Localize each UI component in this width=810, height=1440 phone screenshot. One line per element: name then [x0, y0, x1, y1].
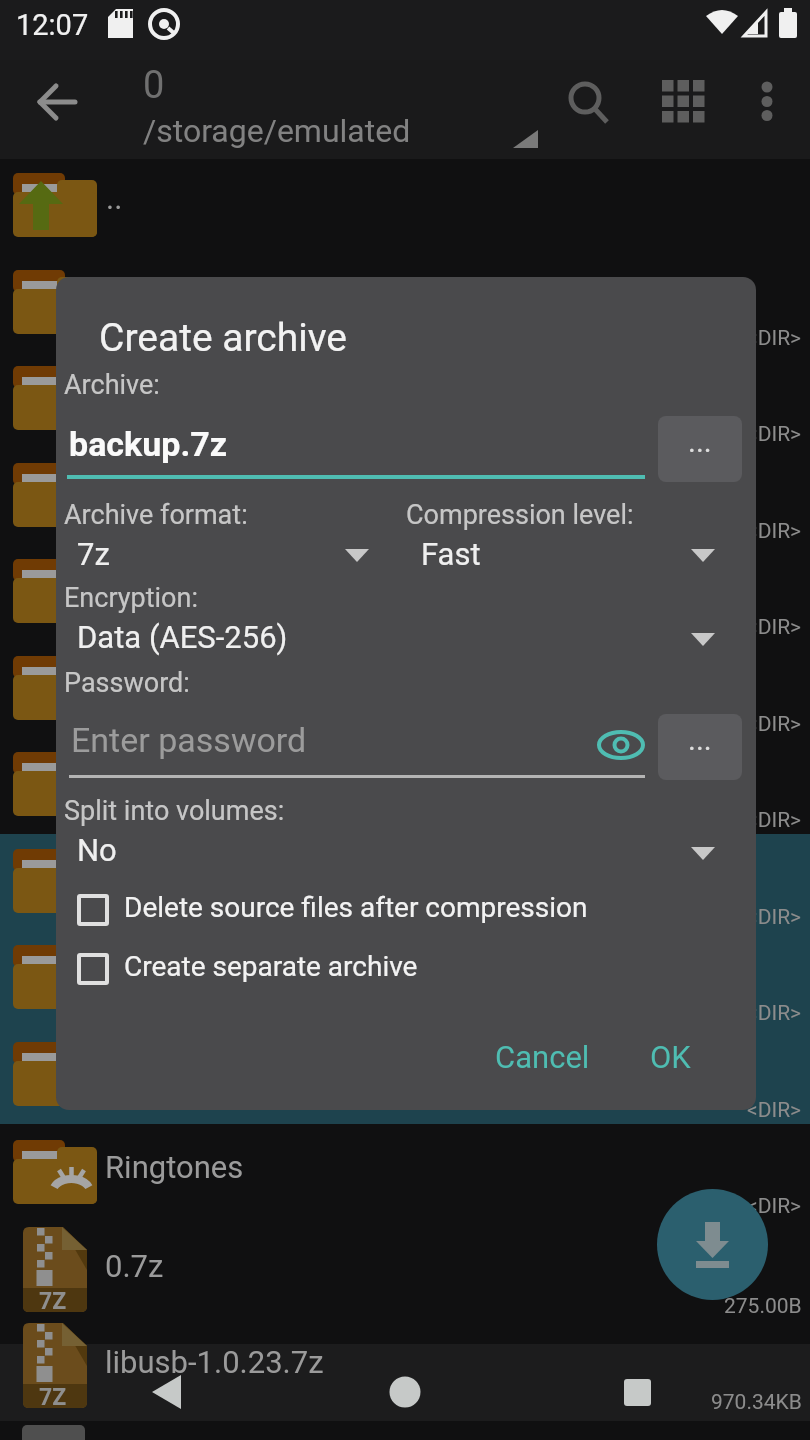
staticText: Password: — [64, 667, 190, 699]
staticText: libusb-1.0.23.7z — [105, 1344, 324, 1380]
button[interactable]: ... — [658, 714, 742, 780]
staticText: 275.00B — [724, 1294, 802, 1319]
staticText: 7z — [77, 536, 110, 572]
staticText: <DIR> — [747, 326, 802, 351]
staticText: 0.7z — [105, 1248, 164, 1284]
button[interactable] — [408, 529, 746, 581]
button[interactable] — [0, 1220, 810, 1317]
staticText: OK — [650, 1039, 691, 1075]
staticText: <DIR> — [747, 905, 802, 930]
button[interactable] — [77, 953, 109, 985]
staticText: Delete source files after compression — [124, 891, 588, 924]
button[interactable] — [77, 894, 109, 926]
staticText: 970.34KB — [711, 1390, 802, 1415]
button[interactable] — [622, 1377, 654, 1409]
button[interactable] — [67, 416, 645, 482]
button[interactable] — [64, 612, 746, 664]
button[interactable] — [64, 529, 384, 581]
staticText: ... — [688, 722, 712, 757]
staticText: Encryption: — [64, 582, 198, 614]
staticText: Fast — [421, 536, 481, 572]
button[interactable] — [150, 1374, 188, 1412]
staticText: Ringtones — [105, 1149, 244, 1185]
staticText: ... — [688, 424, 712, 459]
button[interactable]: /storage/emulated — [143, 112, 411, 150]
staticText: .. — [106, 180, 123, 216]
staticText: 12:07 — [16, 8, 89, 42]
button[interactable] — [38, 84, 76, 120]
staticText: Split into volumes: — [64, 795, 285, 827]
staticText: Cancel — [495, 1039, 590, 1075]
button[interactable] — [64, 825, 746, 877]
staticText: No — [77, 832, 117, 868]
staticText: <DIR> — [747, 519, 802, 544]
staticText: Create archive — [99, 315, 348, 361]
staticText: <DIR> — [747, 1098, 802, 1123]
button[interactable] — [0, 1316, 810, 1413]
staticText: 7Z — [39, 1288, 67, 1315]
staticText: Enter password — [71, 720, 307, 760]
button[interactable]: OK — [615, 1027, 725, 1087]
staticText: 0 — [143, 63, 165, 108]
staticText: Data (AES-256) — [77, 619, 288, 655]
button[interactable] — [0, 1123, 810, 1220]
staticText: Compression level: — [406, 499, 634, 531]
staticText: <DIR> — [747, 808, 802, 833]
staticText: 7Z — [39, 1384, 67, 1411]
button[interactable] — [67, 714, 645, 780]
button[interactable] — [389, 1375, 423, 1409]
staticText: <DIR> — [747, 712, 802, 737]
button[interactable]: ... — [658, 416, 742, 482]
staticText: Archive: — [64, 369, 160, 401]
staticText: <DIR> — [747, 1001, 802, 1026]
staticText: Create separate archive — [124, 950, 418, 983]
staticText: <DIR> — [747, 422, 802, 447]
button[interactable] — [568, 82, 612, 126]
staticText: <DIR> — [747, 615, 802, 640]
button[interactable] — [657, 1189, 768, 1300]
button[interactable] — [755, 80, 779, 124]
button[interactable]: Cancel — [472, 1027, 612, 1087]
staticText: Archive format: — [64, 499, 248, 531]
staticText: backup.7z — [69, 424, 228, 464]
staticText: <DIR> — [747, 1194, 802, 1219]
button[interactable] — [662, 80, 706, 124]
